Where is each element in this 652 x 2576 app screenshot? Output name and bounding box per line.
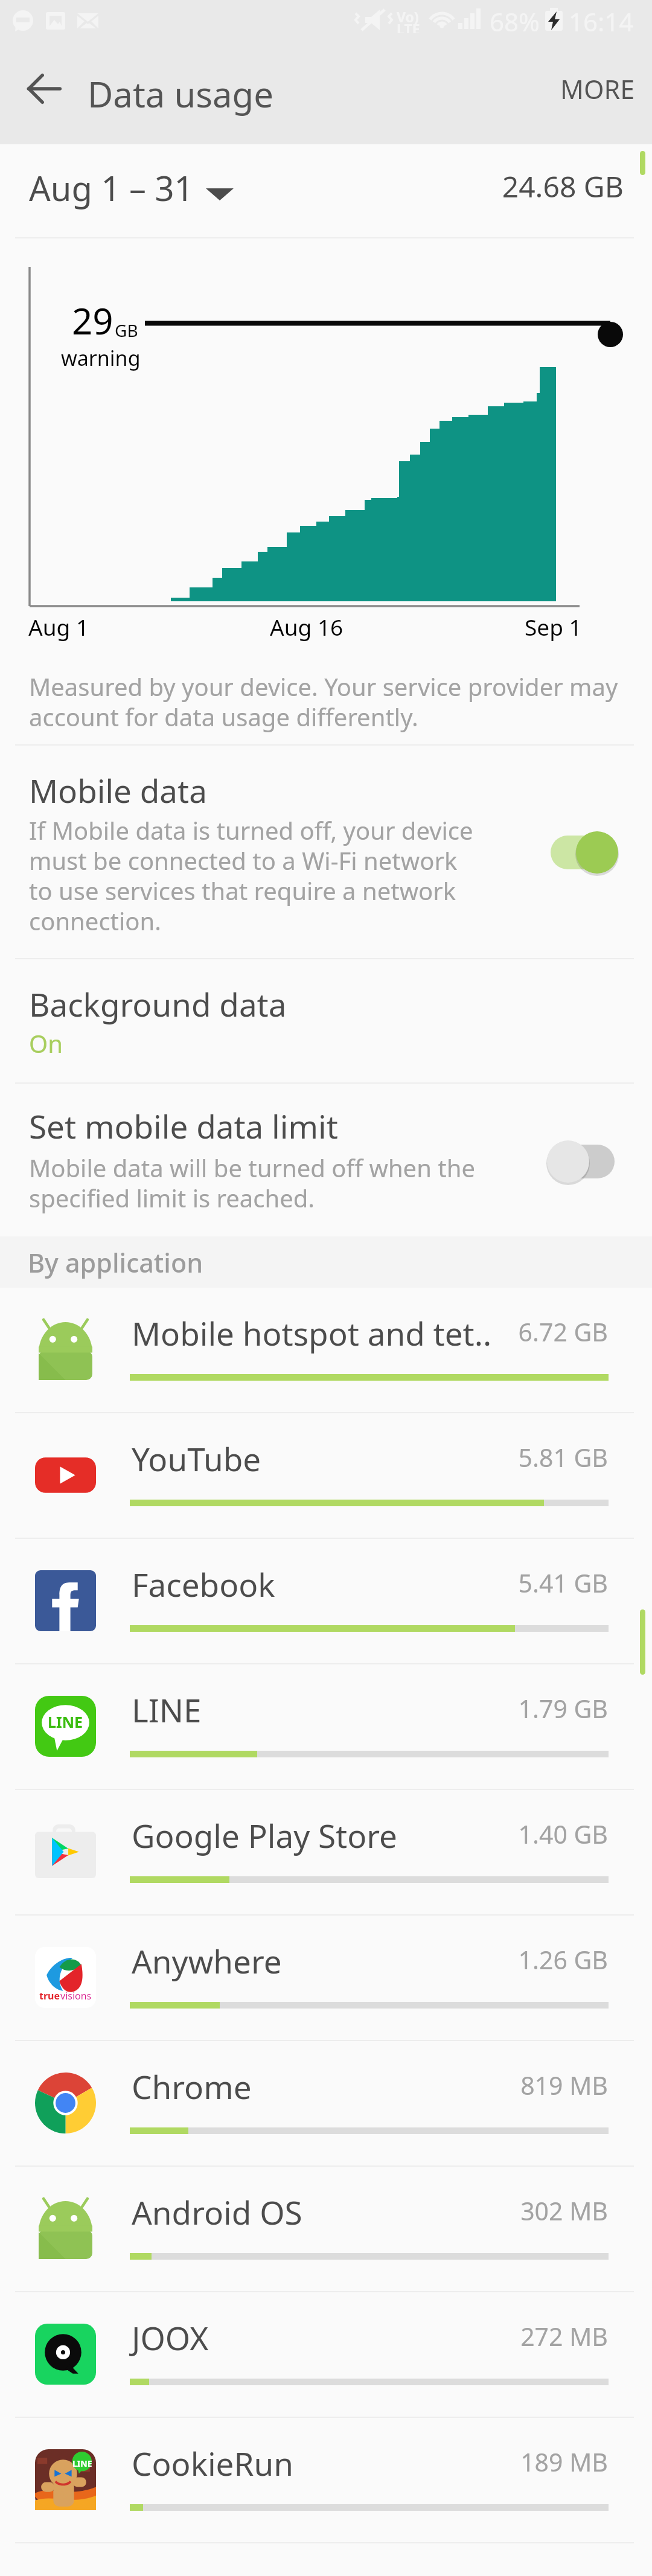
staticText: GB — [115, 319, 138, 342]
staticText: 29 — [72, 296, 113, 345]
button[interactable]: LINE — [0, 2418, 652, 2542]
button[interactable]: LINE — [0, 1664, 652, 1789]
staticText: MORE — [560, 71, 635, 107]
button[interactable]: Switch off — [547, 1140, 618, 1183]
staticText: 68% — [490, 4, 540, 37]
staticText: 24.68 GB — [382, 167, 624, 206]
staticText: LINE — [72, 2458, 92, 2469]
staticText: Mobile data — [29, 769, 207, 812]
staticText: Facebook — [132, 1562, 275, 1606]
staticText: 1.40 GB — [366, 1817, 608, 1851]
button[interactable]: Navigate up — [11, 56, 77, 122]
staticText: Mobile hotspot and tet.. — [132, 1311, 492, 1355]
staticText: Measured by your device. Your service pr… — [29, 670, 618, 733]
staticText: Android OS — [132, 2190, 302, 2234]
staticText: visions — [60, 1989, 92, 2002]
staticText: Google Play Store — [132, 1814, 397, 1857]
staticText: LINE — [48, 1711, 83, 1732]
button[interactable]: Chrome — [0, 2041, 652, 2165]
staticText: 189 MB — [366, 2445, 608, 2479]
staticText: warning — [61, 344, 141, 372]
staticText: Anywhere — [132, 1939, 282, 1983]
staticText: By application — [28, 1245, 203, 1280]
staticText: YouTube — [132, 1437, 261, 1480]
button[interactable]: true — [0, 1916, 652, 2040]
staticText: 6.72 GB — [366, 1315, 608, 1349]
button[interactable]: Mobile hotspot and tet.. — [0, 1288, 652, 1412]
staticText: Set mobile data limit — [29, 1104, 338, 1148]
staticText: 5.81 GB — [366, 1440, 608, 1474]
staticText: CookieRun — [132, 2441, 293, 2485]
button[interactable]: Switch on — [547, 831, 618, 874]
staticText: Aug 16 — [270, 612, 344, 642]
staticText: true — [39, 1989, 60, 2002]
staticText: Chrome — [132, 2065, 252, 2108]
staticText: JOOX — [132, 2316, 209, 2359]
button[interactable]: MORE — [543, 33, 652, 144]
staticText: Sep 1 — [525, 612, 582, 642]
staticText: Data usage — [88, 70, 273, 118]
staticText: 16:14 — [569, 4, 634, 37]
staticText: Mobile data will be turned off when the … — [29, 1151, 475, 1215]
staticText: 1.79 GB — [366, 1692, 608, 1725]
staticText: 819 MB — [366, 2068, 608, 2102]
staticText: LTE — [397, 19, 420, 38]
staticText: Aug 1 – 31 — [29, 165, 194, 211]
button[interactable]: Aug 1 – 31 — [0, 144, 652, 237]
button[interactable]: Android OS — [0, 2167, 652, 2291]
button[interactable]: Google Play Store — [0, 1790, 652, 1914]
staticText: 272 MB — [366, 2319, 608, 2353]
staticText: Vo) — [397, 7, 419, 26]
button[interactable]: JOOX — [0, 2292, 652, 2417]
staticText: Aug 1 — [28, 612, 89, 642]
staticText: If Mobile data is turned off, your devic… — [29, 814, 473, 938]
staticText: Background data — [29, 982, 287, 1026]
staticText: LINE — [132, 1688, 202, 1731]
staticText: 1.26 GB — [366, 1943, 608, 1977]
staticText: 5.41 GB — [366, 1566, 608, 1600]
button[interactable]: Facebook — [0, 1539, 652, 1663]
button[interactable]: Mobile data — [0, 746, 652, 958]
button[interactable]: YouTube — [0, 1413, 652, 1538]
button[interactable]: Background data — [0, 959, 652, 1082]
staticText: 302 MB — [366, 2194, 608, 2228]
button[interactable]: Set mobile data limit — [0, 1084, 652, 1236]
staticText: On — [29, 1027, 63, 1059]
